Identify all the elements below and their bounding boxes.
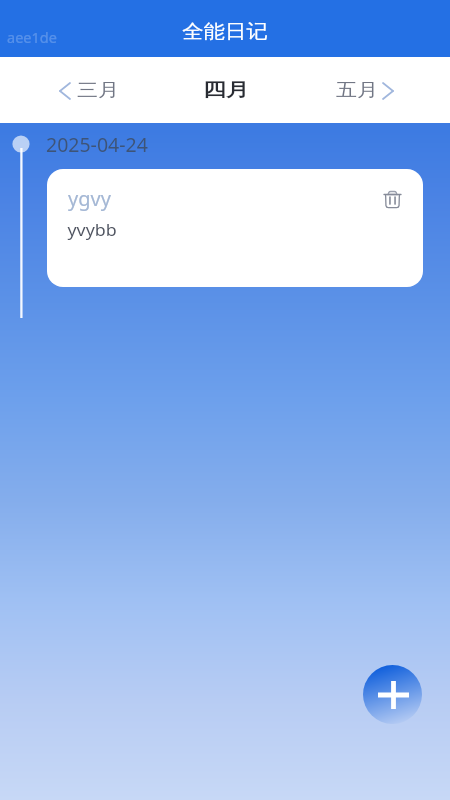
staticText: 2025-04-24 (46, 131, 148, 158)
staticText: 三月 (77, 79, 119, 102)
staticText: yvybb (67, 219, 117, 241)
staticText: 四月 (203, 79, 249, 102)
staticText: 全能日记 (182, 20, 268, 44)
staticText: ygvy (68, 185, 111, 212)
button[interactable]: ygvy (47, 169, 423, 287)
staticText: 五月 (336, 79, 378, 102)
staticText: aee1de (7, 27, 57, 47)
button[interactable]: Delete (379, 186, 405, 212)
button[interactable]: 五月 (325, 64, 405, 117)
button[interactable]: 三月 (48, 64, 130, 117)
button[interactable]: 四月 (190, 64, 262, 117)
button[interactable]: Add entry (363, 665, 422, 724)
